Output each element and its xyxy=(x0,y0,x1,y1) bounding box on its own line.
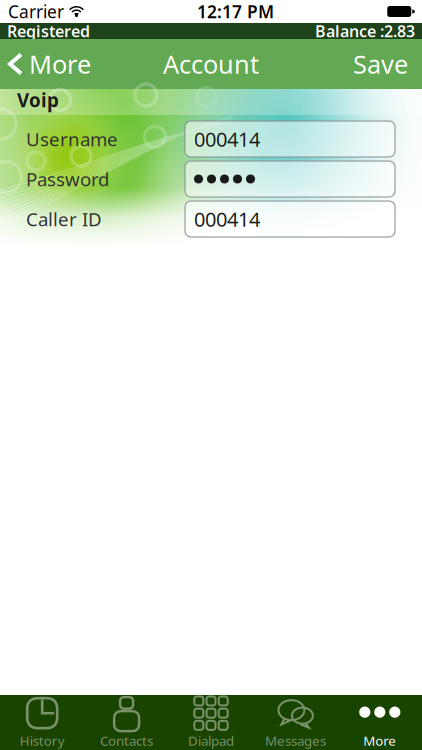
button[interactable]: Messages xyxy=(253,695,338,750)
staticText: 000414 xyxy=(194,206,260,232)
button[interactable]: Save xyxy=(339,39,422,89)
staticText: Contacts xyxy=(100,732,153,749)
button[interactable] xyxy=(185,161,395,197)
staticText: Balance :2.83 xyxy=(315,20,415,42)
staticText: More xyxy=(29,47,91,81)
staticText: 000414 xyxy=(194,126,260,152)
staticText: More xyxy=(363,732,396,749)
staticText: Messages xyxy=(265,732,326,749)
button[interactable]: Dialpad xyxy=(169,695,253,750)
staticText: Username xyxy=(26,127,118,151)
staticText: Voip xyxy=(17,88,59,112)
staticText: Password xyxy=(26,167,109,191)
button[interactable]: More xyxy=(338,695,422,750)
staticText: History xyxy=(20,732,65,749)
button[interactable]: History xyxy=(0,695,84,750)
staticText: 12:17 PM xyxy=(197,0,274,23)
staticText: Caller ID xyxy=(26,207,102,231)
staticText: Account xyxy=(163,47,259,81)
button[interactable]: More xyxy=(0,39,103,89)
button[interactable]: 000414 xyxy=(185,201,395,237)
staticText: Save xyxy=(353,47,408,81)
button[interactable]: 000414 xyxy=(185,121,395,157)
staticText: Carrier xyxy=(8,0,64,23)
staticText: Registered xyxy=(7,20,90,42)
button[interactable]: Contacts xyxy=(84,695,169,750)
staticText: Dialpad xyxy=(188,732,234,749)
